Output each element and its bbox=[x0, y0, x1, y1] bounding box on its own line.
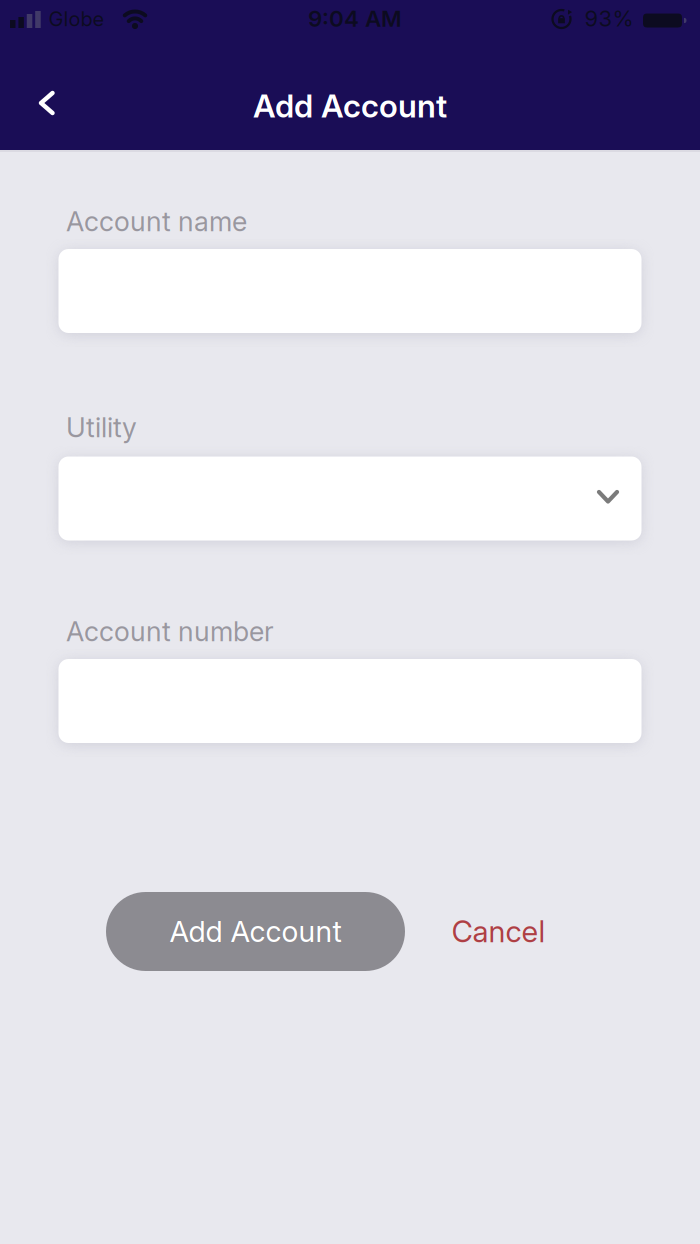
staticText: Utility bbox=[66, 411, 137, 444]
button[interactable]: Utility bbox=[0, 456, 700, 540]
staticText: 93% bbox=[584, 5, 633, 32]
button[interactable]: Add Account bbox=[106, 892, 405, 971]
staticText: Add Account bbox=[253, 87, 447, 125]
staticText: Cancel bbox=[451, 914, 545, 949]
staticText: 9:04 AM bbox=[308, 5, 402, 32]
staticText: Account name bbox=[66, 205, 247, 238]
button[interactable]: Cancel bbox=[433, 892, 563, 971]
staticText: Account number bbox=[66, 615, 274, 648]
staticText: Globe bbox=[48, 7, 104, 31]
staticText: Add Account bbox=[169, 914, 341, 949]
button[interactable]: Back bbox=[21, 77, 73, 129]
